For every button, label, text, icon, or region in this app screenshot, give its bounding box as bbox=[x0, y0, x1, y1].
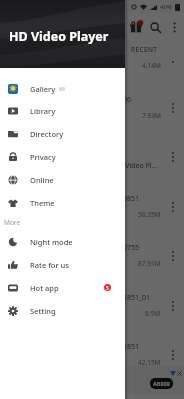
button[interactable]: VID_20230801_123212 bbox=[0, 33, 184, 82]
staticText: Online bbox=[30, 175, 54, 185]
button[interactable]: Gift bbox=[126, 17, 146, 37]
staticText: Theme bbox=[30, 198, 55, 208]
staticText: 50.35M bbox=[138, 210, 161, 219]
button[interactable]: Setting bbox=[0, 299, 125, 322]
staticText: RECENT bbox=[131, 45, 158, 54]
button[interactable]: Night mode bbox=[0, 230, 125, 253]
button[interactable]: Online bbox=[0, 168, 125, 191]
staticText: 40% bbox=[160, 3, 172, 11]
button[interactable]: Hot app bbox=[0, 276, 125, 299]
staticText: ABRIR bbox=[153, 380, 170, 387]
staticText: Privacy bbox=[30, 152, 56, 162]
staticText: Directory bbox=[30, 129, 64, 139]
button[interactable]: How to Download Video Pl... bbox=[0, 132, 184, 181]
button[interactable]: Gallery bbox=[0, 77, 125, 100]
staticText: Night mode bbox=[30, 237, 73, 247]
button[interactable]: VID_20230725_120851 bbox=[0, 182, 184, 231]
staticText: Library bbox=[30, 106, 56, 116]
staticText: 8.9M bbox=[145, 309, 161, 318]
button[interactable]: Item menu bbox=[161, 281, 184, 330]
button[interactable]: VIDEOS bbox=[0, 40, 105, 59]
button[interactable]: Privacy bbox=[0, 145, 125, 168]
button[interactable]: RECENT bbox=[105, 40, 184, 59]
staticText: How to Download Video Pl... bbox=[65, 161, 158, 171]
staticText: VIDEOS bbox=[39, 45, 67, 55]
staticText: VID_20230725_120851 bbox=[65, 194, 139, 204]
staticText: 4.14M bbox=[142, 61, 161, 70]
staticText: 87.91M bbox=[138, 259, 161, 268]
staticText: More bbox=[4, 218, 21, 227]
staticText: VID_20230727_121851_01 bbox=[65, 293, 151, 303]
button[interactable]: VID_20230727_121851_01 bbox=[0, 281, 184, 330]
button[interactable]: Item menu bbox=[161, 132, 184, 181]
staticText: VID_20230801_123212 bbox=[65, 45, 139, 55]
button[interactable]: Directory bbox=[0, 122, 125, 145]
staticText: VID_20230712_0006 bbox=[65, 95, 131, 105]
button[interactable]: Search bbox=[146, 18, 165, 37]
button[interactable]: VID_20230727_121851 bbox=[0, 330, 184, 379]
button[interactable]: Library bbox=[0, 99, 125, 122]
staticText: Hot app bbox=[30, 283, 59, 293]
staticText: Gallery bbox=[30, 84, 56, 94]
staticText: 7.93M bbox=[142, 111, 161, 120]
button[interactable]: VID_20230712_0006 bbox=[0, 83, 184, 132]
staticText: 42.15M bbox=[138, 358, 161, 367]
button[interactable]: VID_20230725_120755 bbox=[0, 231, 184, 280]
staticText: Setting bbox=[30, 306, 56, 316]
button[interactable]: Item menu bbox=[161, 182, 184, 231]
button[interactable]: Rate for us bbox=[0, 253, 125, 276]
staticText: 5 bbox=[106, 285, 109, 291]
staticText: Rate for us bbox=[30, 260, 69, 270]
button[interactable]: Theme bbox=[0, 191, 125, 214]
button[interactable]: ABRIR bbox=[150, 378, 173, 389]
button[interactable]: Item menu bbox=[161, 330, 184, 379]
staticText: VID_20230727_121851 bbox=[65, 342, 139, 352]
button[interactable]: Item menu bbox=[161, 231, 184, 280]
staticText: HD Video Player bbox=[9, 28, 109, 45]
staticText: VID_20230725_120755 bbox=[65, 243, 139, 253]
button[interactable]: Item menu bbox=[161, 83, 184, 132]
button[interactable]: More options bbox=[165, 18, 184, 37]
